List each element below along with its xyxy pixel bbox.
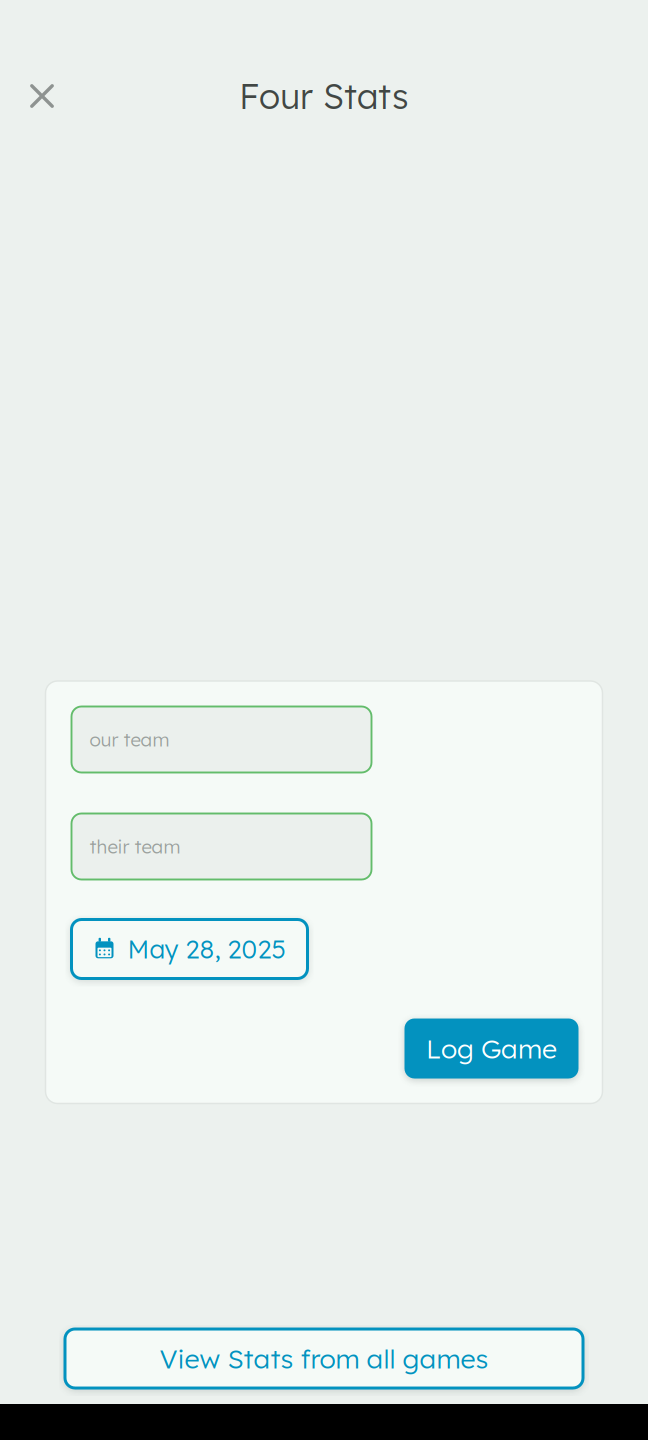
staticText: their team: [89, 835, 180, 858]
button[interactable]: Close: [14, 68, 70, 124]
staticText: View Stats from all games: [159, 1342, 488, 1375]
button[interactable]: Log Game: [404, 1018, 578, 1078]
button[interactable]: View Stats from all games: [65, 1329, 583, 1388]
staticText: Log Game: [426, 1032, 557, 1065]
button[interactable]: May 28, 2025: [71, 919, 307, 978]
staticText: Four Stats: [239, 74, 409, 118]
staticText: May 28, 2025: [127, 933, 285, 965]
staticText: our team: [89, 728, 169, 751]
